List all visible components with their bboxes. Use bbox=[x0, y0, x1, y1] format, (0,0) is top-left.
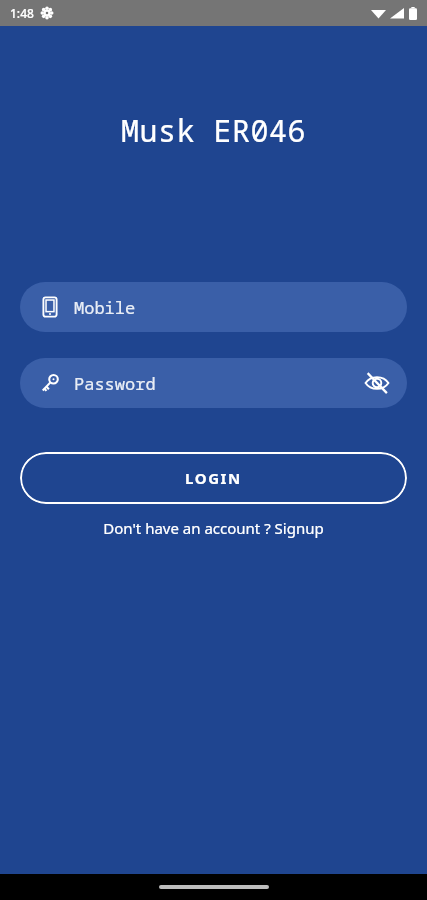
staticText: LOGIN bbox=[185, 468, 242, 488]
button[interactable]: Mobile bbox=[20, 282, 407, 332]
button[interactable]: Show password bbox=[355, 361, 399, 405]
staticText: Mobile bbox=[74, 296, 407, 319]
staticText: Don't have an account ? Signup bbox=[103, 518, 324, 538]
button[interactable]: LOGIN bbox=[20, 452, 407, 504]
button[interactable]: Password bbox=[20, 358, 407, 408]
staticText: 1:48 bbox=[10, 5, 34, 21]
staticText: Musk ER046 bbox=[0, 110, 427, 151]
button[interactable]: Don't have an account ? Signup bbox=[0, 518, 427, 538]
staticText: Password bbox=[74, 372, 355, 395]
